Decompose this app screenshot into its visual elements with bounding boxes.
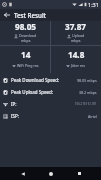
- button[interactable]: 14: [0, 49, 50, 68]
- button[interactable]: 37.87: [51, 21, 101, 43]
- staticText: 106.219.161.181: [75, 102, 97, 106]
- staticText: Peak Upload Speed:: [11, 89, 54, 95]
- button[interactable]: 14.8: [51, 49, 101, 68]
- staticText: Airtel: [88, 114, 97, 119]
- staticText: 98.05: [15, 21, 37, 32]
- staticText: Test Result: [14, 11, 46, 19]
- button[interactable]: Home: [44, 167, 57, 180]
- staticText: Jitter ms: [71, 63, 86, 68]
- staticText: Download: [19, 33, 37, 38]
- staticText: 14.8: [68, 49, 85, 60]
- staticText: IP:: [11, 101, 17, 107]
- button[interactable]: ISP:: [0, 110, 101, 122]
- button[interactable]: IP:: [0, 98, 101, 110]
- button[interactable]: Back: [0, 9, 14, 21]
- button[interactable]: 98.05: [0, 21, 50, 43]
- button[interactable]: Recents: [73, 167, 86, 180]
- staticText: 98.05 mbps: [77, 78, 97, 83]
- staticText: mbps: [71, 38, 81, 43]
- button[interactable]: Peak Upload Speed:: [0, 86, 101, 98]
- button[interactable]: Back: [16, 167, 29, 180]
- staticText: 37.87: [65, 21, 87, 32]
- staticText: 38.2 mbps: [79, 90, 97, 95]
- staticText: 14: [21, 49, 31, 60]
- staticText: WiFi Ping ms: [17, 63, 39, 68]
- staticText: mbps: [21, 38, 31, 43]
- staticText: Peak Download Speed:: [11, 77, 60, 83]
- staticText: Upload: [72, 33, 85, 38]
- button[interactable]: Peak Download Speed:: [0, 74, 101, 86]
- staticText: ISP:: [11, 113, 19, 119]
- staticText: 1:31: [88, 1, 99, 8]
